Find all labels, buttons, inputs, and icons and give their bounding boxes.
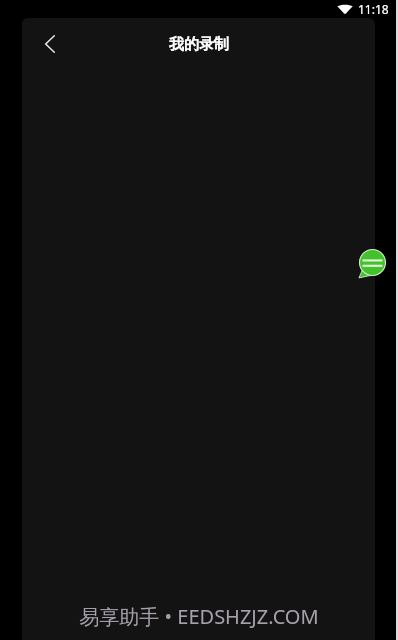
- button[interactable]: Back: [31, 25, 69, 63]
- staticText: 我的录制: [169, 35, 229, 54]
- staticText: 11:18: [358, 1, 389, 17]
- staticText: 易享助手 • EEDSHZJZ.COM: [79, 603, 319, 630]
- button[interactable]: Customer service chat: [357, 247, 388, 278]
